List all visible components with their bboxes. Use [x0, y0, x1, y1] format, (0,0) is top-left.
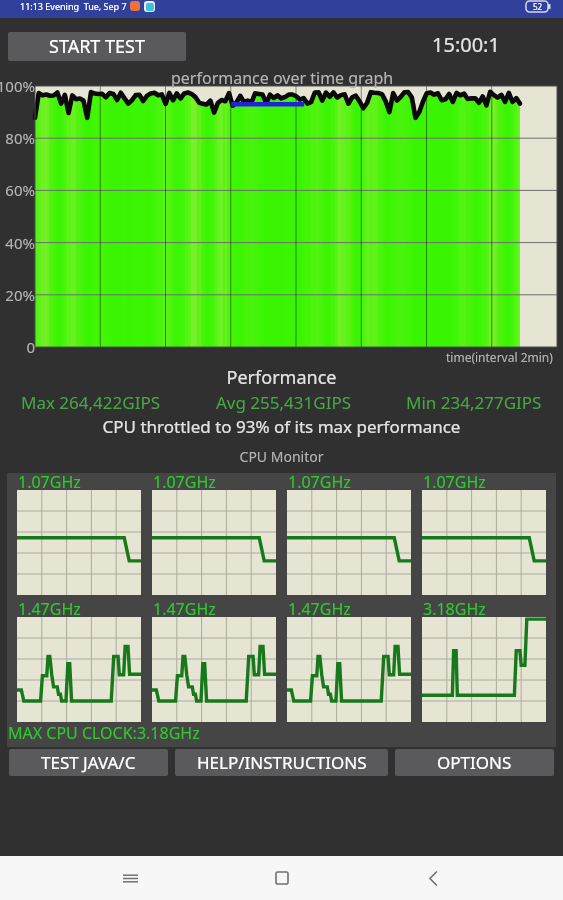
- staticText: MAX CPU CLOCK:3.18GHz: [8, 722, 200, 744]
- staticText: 80%: [5, 128, 35, 148]
- staticText: 1.07GHz: [423, 471, 486, 488]
- button[interactable]: Back: [411, 856, 455, 900]
- staticText: 0: [26, 337, 35, 357]
- staticText: time(interval 2min): [446, 349, 553, 365]
- staticText: 11:13 Evening Tue, Sep 7: [20, 0, 127, 12]
- staticText: Min 234,277GIPS: [406, 391, 542, 414]
- staticText: 1.07GHz: [18, 471, 81, 488]
- staticText: TEST JAVA/C: [41, 751, 136, 774]
- staticText: Performance: [0, 365, 563, 390]
- staticText: 1.07GHz: [153, 471, 216, 488]
- button[interactable]: START TEST: [8, 32, 186, 61]
- button[interactable]: HELP/INSTRUCTIONS: [175, 749, 388, 776]
- staticText: 1.47GHz: [18, 598, 81, 615]
- staticText: CPU throttled to 93% of its max performa…: [0, 415, 563, 438]
- staticText: HELP/INSTRUCTIONS: [197, 751, 367, 774]
- button[interactable]: Recents: [108, 856, 152, 900]
- staticText: 1.07GHz: [288, 471, 351, 488]
- staticText: 100%: [0, 76, 35, 96]
- staticText: 40%: [5, 233, 35, 253]
- staticText: 15:00:1: [432, 31, 500, 58]
- staticText: 1.47GHz: [288, 598, 351, 615]
- staticText: performance over time graph: [171, 67, 394, 89]
- staticText: START TEST: [49, 34, 145, 59]
- staticText: 20%: [5, 285, 35, 305]
- button[interactable]: OPTIONS: [395, 749, 554, 776]
- button[interactable]: TEST JAVA/C: [9, 749, 168, 776]
- staticText: 60%: [5, 180, 35, 200]
- staticText: 3.18GHz: [423, 598, 486, 615]
- staticText: 52: [533, 1, 543, 12]
- button[interactable]: Home: [260, 856, 304, 900]
- staticText: 1.47GHz: [153, 598, 216, 615]
- staticText: Max 264,422GIPS: [21, 391, 161, 414]
- staticText: CPU Monitor: [0, 447, 563, 466]
- staticText: OPTIONS: [437, 751, 512, 774]
- staticText: Avg 255,431GIPS: [216, 391, 352, 414]
